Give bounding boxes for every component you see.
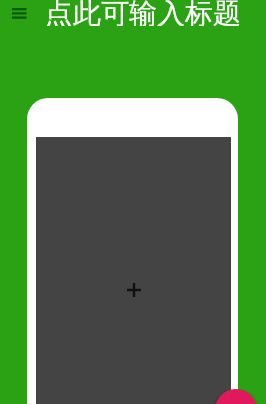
button[interactable]: Add content: [27, 98, 238, 404]
button[interactable]: Add: [215, 389, 257, 404]
button[interactable]: Open navigation menu: [0, 0, 45, 30]
button[interactable]: 点此可输入标题: [45, 0, 241, 26]
button[interactable]: Add content: [36, 137, 231, 404]
